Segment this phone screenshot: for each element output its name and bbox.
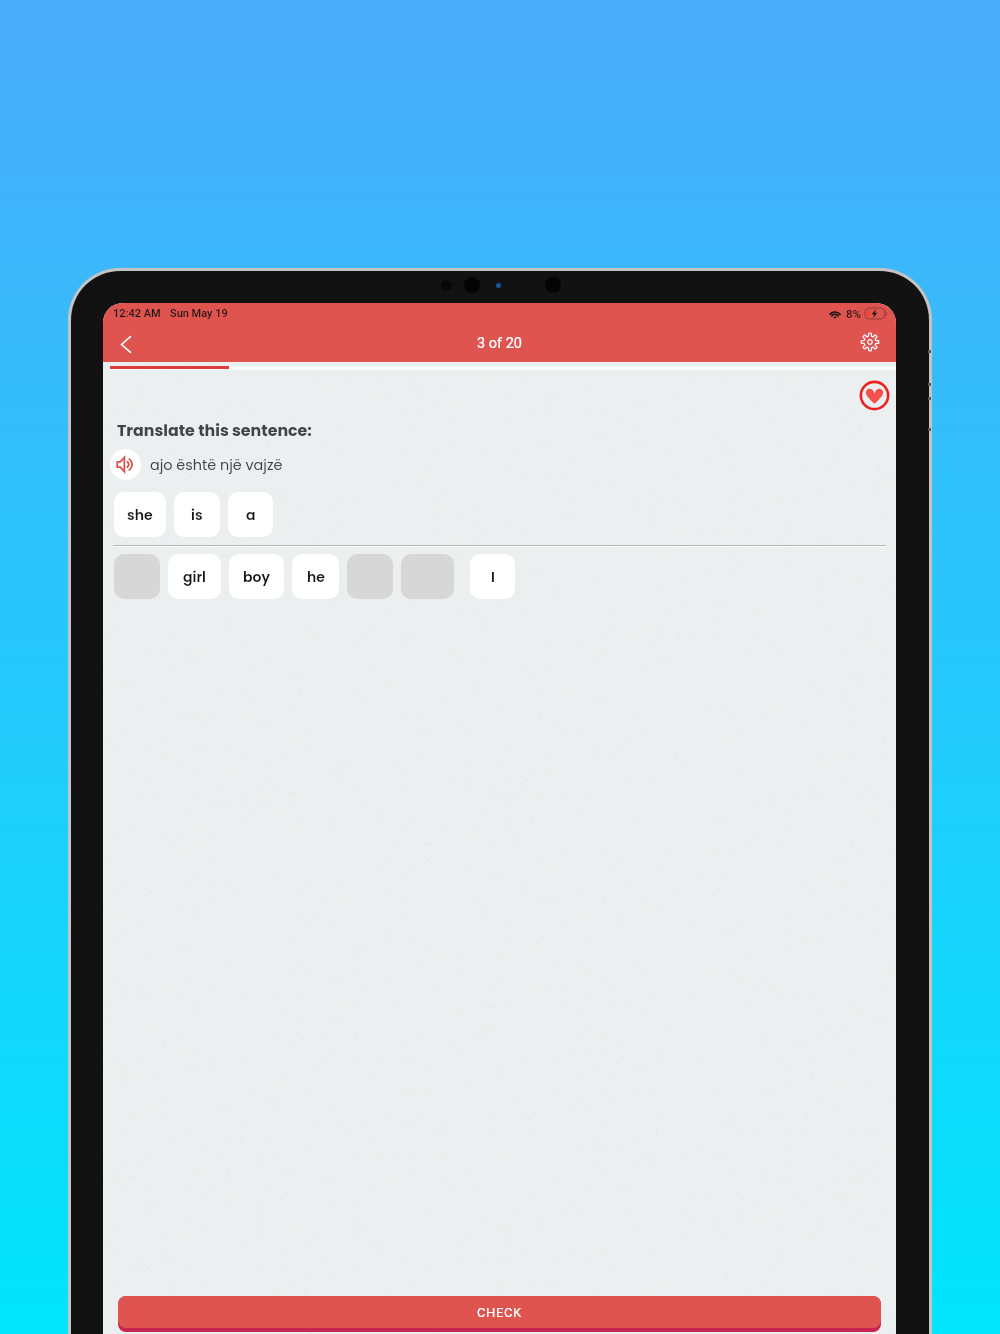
button[interactable]: Favorite — [855, 375, 891, 411]
staticText: CHECK — [477, 1305, 522, 1320]
button[interactable]: he — [292, 554, 339, 599]
button[interactable]: a — [228, 492, 273, 537]
staticText: Translate this sentence: — [117, 419, 312, 441]
button[interactable]: Empty word slot — [347, 554, 393, 599]
button[interactable]: Empty word slot — [114, 554, 160, 599]
staticText: I — [491, 567, 495, 587]
button[interactable]: Settings — [852, 326, 888, 362]
button[interactable]: is — [174, 492, 220, 537]
button[interactable]: I — [470, 554, 515, 599]
staticText: 8% — [846, 307, 861, 320]
staticText: he — [307, 567, 325, 587]
staticText: ajo është një vajzë — [150, 455, 283, 475]
staticText: 12:42 AM — [113, 307, 161, 320]
staticText: Sun May 19 — [170, 307, 228, 320]
staticText: she — [127, 505, 153, 525]
button[interactable]: Back — [109, 326, 145, 362]
button[interactable]: girl — [168, 554, 221, 599]
button[interactable]: Empty word slot — [401, 554, 454, 599]
button[interactable]: CHECK — [118, 1296, 881, 1332]
staticText: girl — [183, 567, 206, 587]
staticText: boy — [243, 567, 270, 587]
staticText: a — [246, 505, 256, 525]
staticText: 3 of 20 — [477, 335, 522, 352]
button[interactable]: she — [114, 492, 166, 537]
button[interactable]: boy — [229, 554, 284, 599]
staticText: is — [191, 505, 203, 525]
button[interactable]: Play audio — [110, 449, 141, 480]
